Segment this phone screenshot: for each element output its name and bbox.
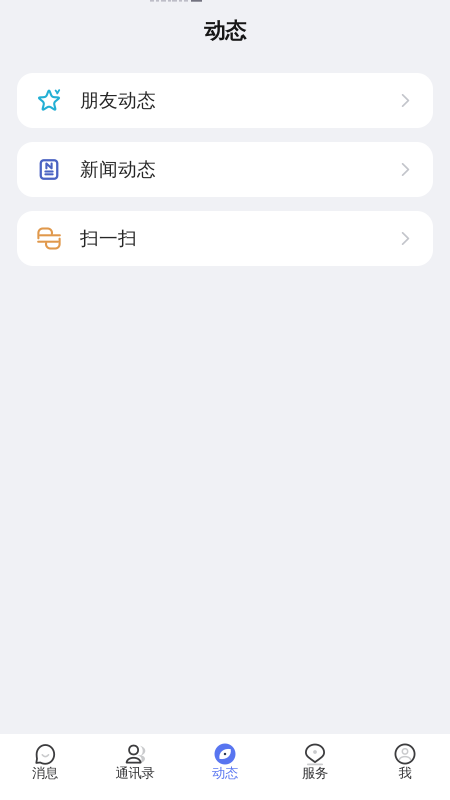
button[interactable]: 扫一扫 <box>17 211 433 266</box>
staticText: 我 <box>398 765 411 781</box>
staticText: 动态 <box>204 18 246 44</box>
button[interactable]: 我 <box>360 734 450 800</box>
staticText: 新闻动态 <box>80 158 156 181</box>
staticText: 通讯录 <box>115 765 154 781</box>
button[interactable]: 动态 <box>180 734 270 800</box>
staticText: 消息 <box>32 765 58 781</box>
staticText: 服务 <box>302 765 328 781</box>
staticText: 动态 <box>212 765 238 781</box>
staticText: 朋友动态 <box>80 89 156 112</box>
button[interactable]: 消息 <box>0 734 90 800</box>
button[interactable]: 通讯录 <box>90 734 180 800</box>
button[interactable]: 新闻动态 <box>17 142 433 197</box>
button[interactable]: 服务 <box>270 734 360 800</box>
button[interactable]: 朋友动态 <box>17 73 433 128</box>
staticText: 扫一扫 <box>80 227 137 250</box>
